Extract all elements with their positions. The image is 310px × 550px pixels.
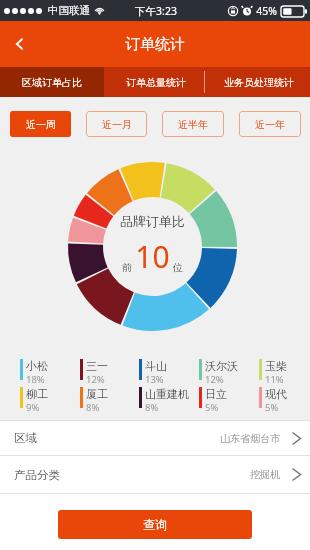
staticText: 柳工 [26,387,48,401]
staticText: 近一周 [26,118,56,131]
staticText: 5% [205,401,219,414]
staticText: 近一月 [102,118,132,131]
staticText: 山东省烟台市 [220,432,280,445]
button[interactable]: 近一周 [10,111,71,137]
staticText: 45% [256,4,277,18]
staticText: 区域 [14,431,37,445]
staticText: 产品分类 [14,468,60,482]
staticText: 区域订单占比 [22,76,82,89]
button[interactable]: 山重建机 [139,387,189,414]
button[interactable]: 厦工 [80,387,108,414]
staticText: 近半年 [178,118,208,131]
staticText: 订单统计 [125,35,185,54]
staticText: 近一年 [255,118,285,131]
staticText: 玉柴 [265,359,287,373]
staticText: 业务员处理统计 [224,76,294,89]
button[interactable]: 沃尔沃 [199,359,238,386]
staticText: 订单总量统计 [126,76,186,89]
button[interactable]: 查询 [58,510,252,539]
staticText: 三一 [86,359,108,373]
button[interactable]: 日立 [199,387,227,414]
staticText: 沃尔沃 [205,359,238,373]
staticText: 下午3:23 [135,4,177,18]
staticText: 查询 [143,517,167,532]
staticText: 前 [122,261,132,274]
button[interactable]: 业务员处理统计 [207,67,310,97]
staticText: 品牌订单比 [120,213,185,229]
staticText: 8% [86,401,100,414]
staticText: 10 [135,236,170,277]
staticText: 小松 [26,359,48,373]
staticText: 8% [145,401,159,414]
button[interactable]: 近一年 [239,111,301,137]
staticText: 18% [26,373,45,386]
button[interactable]: 区域 [0,421,310,455]
button[interactable]: 现代 [259,387,287,414]
button[interactable]: 近一月 [86,111,147,137]
button[interactable]: 订单总量统计 [104,67,207,97]
staticText: 日立 [205,387,227,401]
button[interactable]: 产品分类 [0,456,310,493]
staticText: 9% [26,401,40,414]
button[interactable]: 近半年 [162,111,224,137]
button[interactable]: 小松 [20,359,48,386]
staticText: 12% [86,373,105,386]
staticText: 12% [205,373,224,386]
staticText: 位 [173,261,183,274]
staticText: 厦工 [86,387,108,401]
staticText: 中国联通 [48,4,90,17]
staticText: 挖掘机 [250,468,280,481]
button[interactable]: 区域订单占比 [0,67,104,97]
staticText: 斗山 [145,359,167,373]
staticText: 山重建机 [145,387,189,401]
staticText: 5% [265,401,279,414]
button[interactable]: 斗山 [139,359,167,386]
button[interactable]: 三一 [80,359,108,386]
button[interactable]: 柳工 [20,387,48,414]
button[interactable]: 玉柴 [259,359,287,386]
button[interactable]: 返回 [0,24,40,64]
staticText: 现代 [265,387,287,401]
staticText: 13% [145,373,164,386]
staticText: 11% [265,373,284,386]
